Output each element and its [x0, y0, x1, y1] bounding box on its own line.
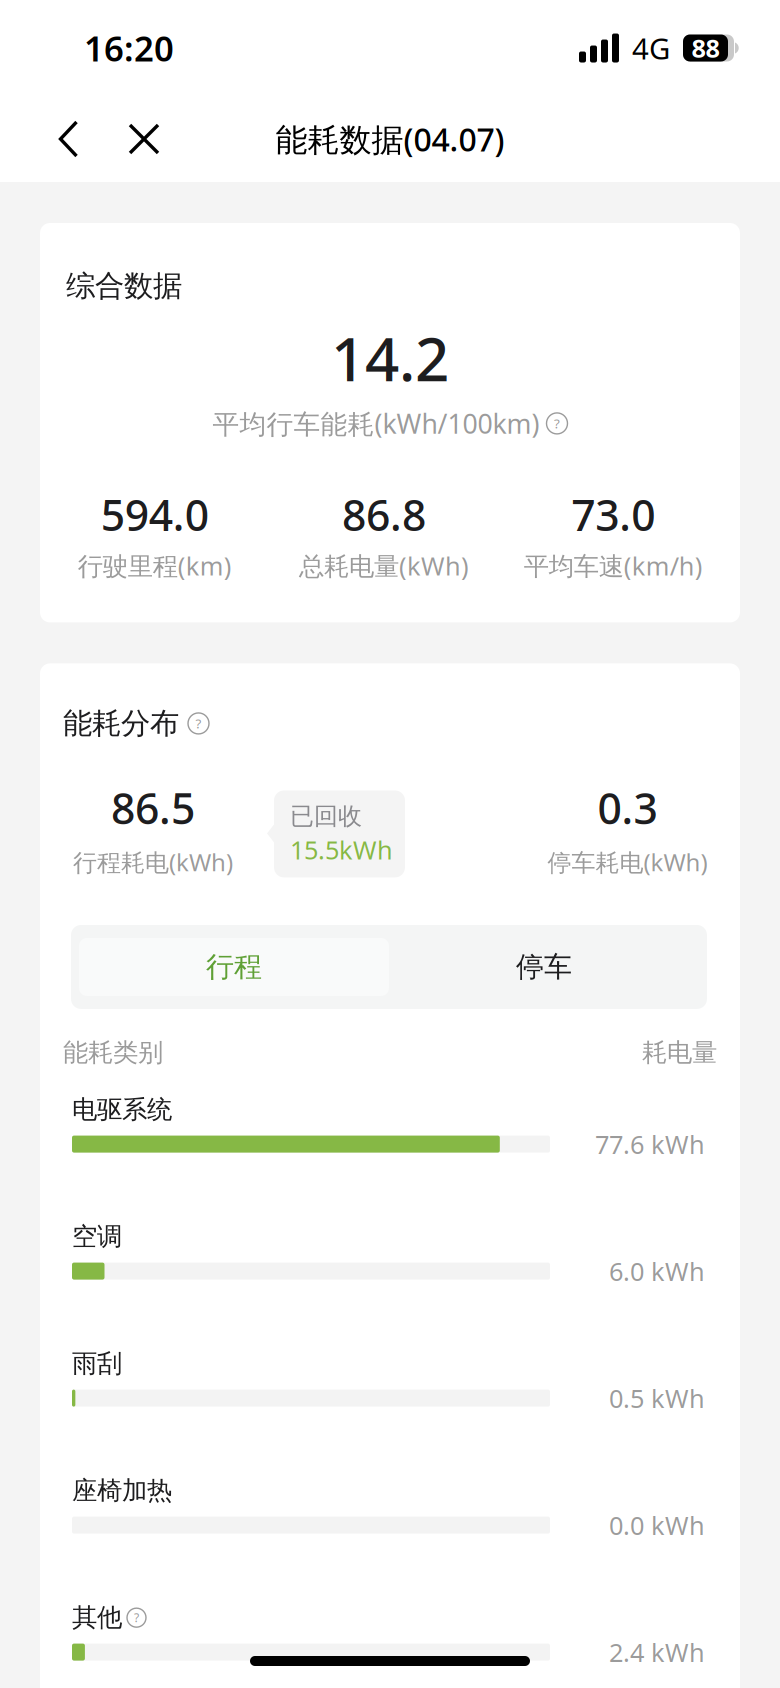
staticText: ? [554, 415, 560, 432]
staticText: 行驶里程(km) [78, 549, 232, 582]
staticText: 雨刮 [72, 1348, 122, 1379]
staticText: 594.0 [101, 486, 209, 543]
staticText: 行程 [206, 950, 262, 984]
staticText: 2.4 kWh [609, 1635, 705, 1669]
staticText: 电驱系统 [72, 1094, 172, 1125]
staticText: 停车耗电(kWh) [547, 846, 707, 878]
staticText: 88 [691, 31, 719, 65]
staticText: 0.3 [597, 779, 657, 836]
staticText: 16:20 [84, 25, 174, 71]
staticText: 座椅加热 [72, 1475, 172, 1506]
staticText: 耗电量 [642, 1037, 717, 1068]
staticText: 综合数据 [66, 268, 182, 304]
staticText: 空调 [72, 1221, 122, 1252]
staticText: 6.0 kWh [609, 1254, 705, 1288]
staticText: 0.5 kWh [609, 1381, 705, 1415]
staticText: 总耗电量(kWh) [299, 549, 469, 582]
staticText: 其他 [72, 1602, 122, 1633]
staticText: 14.2 [331, 318, 449, 398]
button[interactable]: 行程 [79, 938, 389, 996]
staticText: ? [134, 1610, 139, 1626]
button[interactable]: 停车 [389, 938, 699, 996]
staticText: 86.5 [111, 779, 195, 836]
staticText: 0.0 kWh [609, 1508, 705, 1542]
staticText: 行程耗电(kWh) [73, 846, 233, 878]
staticText: 73.0 [571, 486, 655, 543]
button[interactable]: Close [109, 96, 179, 182]
staticText: 已回收 [290, 801, 362, 831]
staticText: 能耗分布 [63, 705, 179, 741]
staticText: ? [195, 715, 201, 732]
staticText: 停车 [516, 950, 572, 984]
staticText: 4G [632, 28, 670, 67]
staticText: 能耗数据(04.07) [275, 118, 504, 160]
staticText: 能耗类别 [63, 1037, 163, 1068]
staticText: 86.8 [342, 486, 426, 543]
staticText: 77.6 kWh [595, 1127, 705, 1161]
staticText: 平均行车能耗(kWh/100km) [212, 406, 539, 441]
button[interactable]: Back [28, 96, 109, 182]
staticText: 平均车速(km/h) [524, 549, 703, 582]
staticText: 15.5kWh [290, 833, 393, 866]
